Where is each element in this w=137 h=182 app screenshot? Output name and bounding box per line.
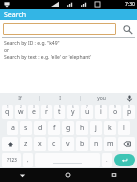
button[interactable]: a <box>7 121 18 135</box>
staticText: v <box>66 139 70 149</box>
button[interactable]: c <box>48 137 60 151</box>
button[interactable]: Space <box>35 153 100 167</box>
button[interactable]: 5 <box>54 105 65 119</box>
staticText: d <box>38 123 43 133</box>
button[interactable]: s <box>20 121 32 135</box>
staticText: 5 <box>59 105 61 109</box>
button[interactable]: you <box>81 93 121 104</box>
staticText: p <box>127 107 132 117</box>
staticText: a <box>11 123 15 133</box>
staticText: , <box>27 156 29 164</box>
staticText: r <box>45 107 48 117</box>
button[interactable]: 8 <box>95 105 107 119</box>
button[interactable]: 6 <box>67 105 79 119</box>
button[interactable]: m <box>104 137 116 151</box>
staticText: 2 <box>20 105 22 109</box>
button[interactable]: Voice input <box>121 93 137 104</box>
staticText: Search by text : e.g. 'elle' or 'elephan… <box>4 54 92 61</box>
staticText: 7 <box>86 105 88 109</box>
button[interactable]: 3 <box>28 105 39 119</box>
button[interactable]: Recent apps <box>91 168 137 182</box>
button[interactable]: . <box>102 153 112 167</box>
staticText: or <box>4 47 10 54</box>
button[interactable]: h <box>76 121 88 135</box>
button[interactable]: 7 <box>81 105 93 119</box>
staticText: g <box>66 123 71 133</box>
staticText: j <box>95 123 97 133</box>
button[interactable]: j <box>90 121 102 135</box>
staticText: c <box>52 139 56 149</box>
staticText: w <box>18 107 24 117</box>
staticText: Search by ID : e.g. "k49" <box>4 40 60 47</box>
button[interactable]: 1 <box>2 105 13 119</box>
button[interactable]: 9 <box>109 105 121 119</box>
button[interactable]: 2 <box>15 105 26 119</box>
staticText: x <box>38 139 42 149</box>
button[interactable]: x <box>34 137 46 151</box>
button[interactable]: 4 <box>41 105 52 119</box>
button[interactable]: k <box>104 121 116 135</box>
button[interactable]: Search <box>120 22 134 36</box>
button[interactable]: ?123 <box>2 153 21 167</box>
button[interactable]: 0 <box>123 105 135 119</box>
button[interactable]: z <box>20 137 32 151</box>
staticText: u <box>85 107 90 117</box>
staticText: f <box>53 123 56 133</box>
staticText: h <box>80 123 85 133</box>
staticText: I <box>59 95 61 102</box>
staticText: t <box>58 107 61 117</box>
button[interactable]: n <box>90 137 102 151</box>
staticText: y <box>71 107 75 117</box>
button[interactable]: Back <box>0 168 45 182</box>
staticText: 3 <box>33 105 35 109</box>
button[interactable]: Backspace <box>118 137 135 151</box>
button[interactable]: I <box>40 93 80 104</box>
staticText: i <box>100 107 102 117</box>
button[interactable]: Enter <box>114 154 135 166</box>
staticText: If <box>18 95 22 102</box>
button[interactable]: g <box>62 121 74 135</box>
button[interactable]: b <box>76 137 88 151</box>
staticText: s <box>24 123 28 133</box>
staticText: 9 <box>114 105 116 109</box>
staticText: b <box>80 139 85 149</box>
staticText: 1 <box>7 105 9 109</box>
button[interactable]: d <box>34 121 46 135</box>
staticText: e <box>32 107 36 117</box>
staticText: . <box>106 156 108 164</box>
staticText: n <box>94 139 99 149</box>
button[interactable]: If <box>0 93 39 104</box>
staticText: ?123 <box>7 157 17 163</box>
staticText: Search <box>4 10 27 20</box>
staticText: 8 <box>100 105 102 109</box>
button[interactable]: Shift <box>2 137 18 151</box>
button[interactable] <box>3 23 116 35</box>
button[interactable]: v <box>62 137 74 151</box>
button[interactable]: , <box>23 153 33 167</box>
staticText: k <box>108 123 112 133</box>
button[interactable]: Home <box>45 168 91 182</box>
staticText: q <box>5 107 10 117</box>
button[interactable]: f <box>48 121 60 135</box>
staticText: you <box>97 95 106 102</box>
staticText: z <box>24 139 28 149</box>
button[interactable]: l <box>118 121 130 135</box>
staticText: o <box>113 107 118 117</box>
staticText: 4 <box>46 105 48 109</box>
staticText: 0 <box>128 105 130 109</box>
staticText: 7:30 <box>125 1 135 8</box>
staticText: l <box>123 123 125 133</box>
staticText: 6 <box>72 105 74 109</box>
staticText: m <box>107 139 114 149</box>
